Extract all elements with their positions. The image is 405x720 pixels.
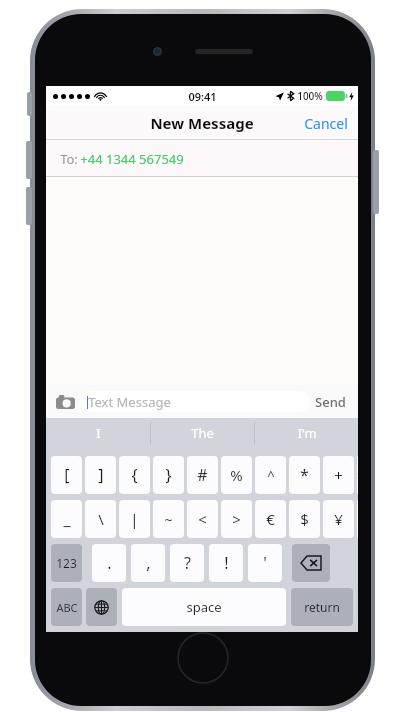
button[interactable]: Text Message bbox=[80, 391, 310, 412]
button[interactable]: ¥ bbox=[323, 500, 354, 538]
button[interactable]: Send bbox=[310, 385, 351, 418]
staticText: Cancel bbox=[304, 114, 348, 133]
staticText: % bbox=[230, 465, 243, 485]
button[interactable]: ' bbox=[248, 544, 282, 582]
staticText: $ bbox=[300, 509, 309, 529]
button[interactable]: + bbox=[323, 456, 354, 494]
staticText: + bbox=[334, 465, 343, 485]
button[interactable]: # bbox=[187, 456, 218, 494]
staticText: > bbox=[232, 509, 241, 529]
button[interactable]: Backspace bbox=[292, 544, 330, 582]
button[interactable]: I bbox=[46, 418, 150, 448]
staticText: +44 1344 567549 bbox=[80, 150, 184, 168]
staticText: * bbox=[300, 464, 309, 486]
staticText: 123 bbox=[56, 555, 77, 571]
staticText: } bbox=[165, 464, 172, 486]
button[interactable]: ! bbox=[209, 544, 243, 582]
button[interactable]: = bbox=[357, 456, 358, 494]
button[interactable]: 123 bbox=[51, 544, 82, 582]
staticText: € bbox=[266, 509, 275, 529]
button[interactable]: ~ bbox=[153, 500, 184, 538]
staticText: ¥ bbox=[334, 509, 343, 529]
staticText: 100% bbox=[297, 89, 323, 103]
button[interactable]: > bbox=[221, 500, 252, 538]
button[interactable]: space bbox=[122, 588, 286, 626]
staticText: ABC bbox=[56, 600, 78, 615]
staticText: ' bbox=[263, 552, 267, 574]
staticText: # bbox=[197, 464, 208, 486]
button[interactable]: ^ bbox=[255, 456, 286, 494]
staticText: ? bbox=[184, 552, 191, 574]
button[interactable]: } bbox=[153, 456, 184, 494]
button[interactable]: < bbox=[187, 500, 218, 538]
staticText: . bbox=[107, 552, 112, 574]
staticText: ! bbox=[224, 552, 229, 574]
staticText: New Message bbox=[150, 113, 254, 133]
staticText: ] bbox=[98, 464, 104, 486]
staticText: Send bbox=[315, 393, 346, 411]
staticText: \ bbox=[98, 509, 104, 529]
button[interactable]: The bbox=[151, 418, 254, 448]
button[interactable]: _ bbox=[51, 500, 82, 538]
staticText: Text Message bbox=[88, 393, 171, 411]
staticText: | bbox=[130, 509, 139, 529]
staticText: The bbox=[191, 424, 214, 442]
button[interactable]: I'm bbox=[255, 418, 358, 448]
staticText: return bbox=[304, 599, 340, 615]
button[interactable]: * bbox=[289, 456, 320, 494]
button[interactable]: ? bbox=[170, 544, 204, 582]
staticText: To: bbox=[58, 150, 80, 168]
button[interactable]: % bbox=[221, 456, 252, 494]
button[interactable]: return bbox=[291, 588, 353, 626]
staticText: space bbox=[186, 598, 222, 616]
button[interactable]: $ bbox=[289, 500, 320, 538]
button[interactable]: , bbox=[131, 544, 165, 582]
button[interactable]: Cancel bbox=[294, 106, 358, 140]
button[interactable]: To: bbox=[46, 140, 358, 177]
staticText: ~ bbox=[164, 510, 173, 529]
staticText: = bbox=[357, 465, 358, 485]
button[interactable]: € bbox=[255, 500, 286, 538]
button[interactable]: Camera bbox=[53, 390, 77, 414]
staticText: ^ bbox=[267, 466, 275, 484]
button[interactable]: ] bbox=[85, 456, 116, 494]
button[interactable]: ABC bbox=[51, 588, 82, 626]
button[interactable]: \ bbox=[85, 500, 116, 538]
staticText: I'm bbox=[297, 424, 317, 442]
staticText: I bbox=[96, 424, 101, 442]
button[interactable]: . bbox=[92, 544, 126, 582]
staticText: { bbox=[131, 464, 138, 486]
staticText: _ bbox=[63, 508, 71, 530]
button[interactable]: Change keyboard bbox=[86, 588, 117, 626]
button[interactable]: [ bbox=[51, 456, 82, 494]
button[interactable]: { bbox=[119, 456, 150, 494]
staticText: [ bbox=[64, 464, 70, 486]
button[interactable]: | bbox=[119, 500, 150, 538]
staticText: 09:41 bbox=[188, 89, 217, 104]
staticText: , bbox=[146, 552, 151, 574]
staticText: < bbox=[198, 509, 207, 529]
